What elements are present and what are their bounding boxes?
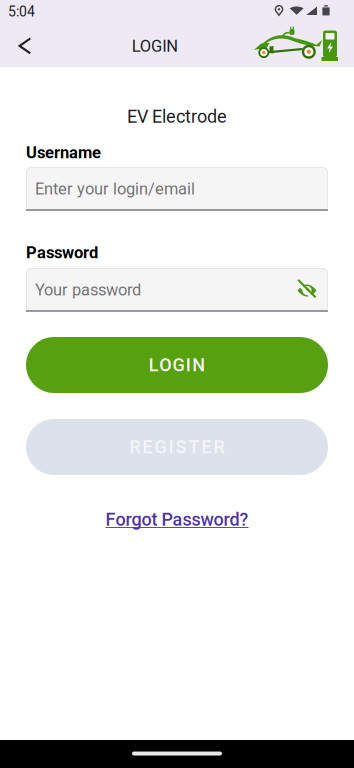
staticText: R E G I S T E R: [129, 436, 224, 458]
staticText: EV Electrode: [127, 106, 227, 127]
staticText: Enter your login/email: [35, 179, 195, 199]
button[interactable]: Forgot Password?: [105, 509, 248, 530]
staticText: LOGIN: [132, 36, 178, 56]
staticText: 5:04: [8, 3, 35, 20]
staticText: LOGIN: [149, 354, 205, 376]
button[interactable]: LOGIN: [26, 337, 328, 393]
button[interactable]: Show password: [292, 275, 322, 305]
button[interactable]: REGISTER: [26, 419, 328, 475]
staticText: Forgot Password?: [105, 509, 248, 530]
staticText: Username: [26, 143, 101, 162]
button[interactable]: Back: [5, 26, 45, 66]
staticText: Your password: [35, 280, 141, 300]
staticText: Password: [26, 243, 98, 262]
